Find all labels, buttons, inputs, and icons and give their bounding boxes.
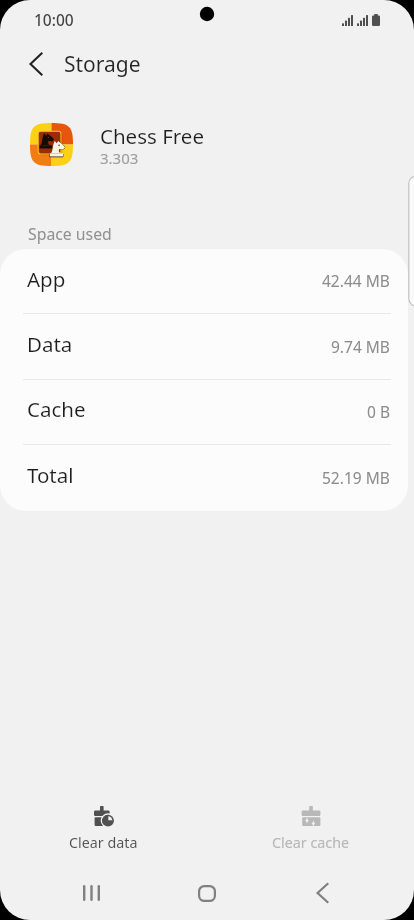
button[interactable]: Recent apps (68, 870, 115, 916)
button[interactable]: Navigate up (18, 46, 54, 82)
button[interactable]: Total (0, 445, 408, 511)
staticText: 10:00 (34, 9, 74, 30)
staticText: Space used (28, 223, 112, 245)
staticText: 3.303 (100, 148, 139, 168)
button[interactable]: Back (299, 870, 346, 916)
staticText: Cache (27, 395, 86, 423)
staticText: 0 B (367, 401, 390, 422)
staticText: 9.74 MB (331, 336, 390, 357)
button[interactable]: Clear data (39, 800, 168, 858)
staticText: Clear data (69, 833, 138, 852)
button[interactable]: App (0, 249, 408, 314)
button[interactable]: Data (0, 314, 408, 380)
staticText: Chess Free (100, 122, 204, 150)
staticText: Total (27, 461, 74, 489)
button[interactable]: Cache (0, 379, 408, 445)
button[interactable]: Clear cache (242, 800, 380, 858)
staticText: 42.44 MB (322, 270, 390, 291)
staticText: Data (27, 330, 73, 358)
staticText: Clear cache (272, 833, 350, 852)
button[interactable]: Home (183, 870, 230, 916)
staticText: Storage (64, 50, 141, 79)
staticText: App (27, 265, 66, 293)
staticText: 52.19 MB (322, 467, 390, 488)
